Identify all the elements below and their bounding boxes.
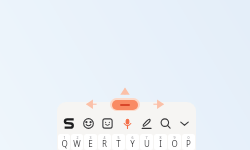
button[interactable]: SwiftKey [61, 115, 78, 131]
button[interactable]: 4 [98, 134, 111, 150]
button[interactable]: 6 [126, 134, 139, 150]
button[interactable]: Resize keyboard [110, 98, 140, 111]
staticText: 4 [103, 135, 106, 140]
staticText: W [73, 138, 81, 149]
staticText: R [102, 138, 107, 149]
staticText: 7 [145, 135, 148, 140]
staticText: 1 [63, 135, 66, 140]
staticText: E [88, 138, 93, 149]
button[interactable]: More options [176, 115, 193, 131]
button[interactable]: 7 [140, 134, 153, 150]
staticText: 2 [76, 135, 79, 140]
staticText: 3 [89, 135, 92, 140]
staticText: Y [130, 138, 135, 149]
staticText: 8 [159, 135, 162, 140]
button[interactable]: 2 [71, 134, 83, 150]
staticText: Q [61, 138, 68, 149]
button[interactable]: Stickers [99, 115, 116, 131]
staticText: T [116, 138, 121, 149]
button[interactable]: Search [157, 115, 174, 131]
button[interactable]: Emoji [80, 115, 97, 131]
button[interactable]: Handwriting [138, 115, 155, 131]
button[interactable]: 0 [182, 134, 195, 150]
button[interactable]: 3 [84, 134, 97, 150]
staticText: P [186, 138, 191, 149]
staticText: 6 [131, 135, 134, 140]
button[interactable]: 8 [154, 134, 167, 150]
button[interactable]: 1 [58, 134, 70, 150]
button[interactable]: 9 [168, 134, 181, 150]
staticText: 5 [117, 135, 120, 140]
staticText: 9 [173, 135, 176, 140]
staticText: O [171, 138, 178, 149]
button[interactable]: 5 [112, 134, 125, 150]
staticText: U [144, 138, 150, 149]
button[interactable]: Voice input [119, 115, 136, 131]
staticText: I [159, 138, 162, 149]
staticText: 0 [187, 135, 190, 140]
